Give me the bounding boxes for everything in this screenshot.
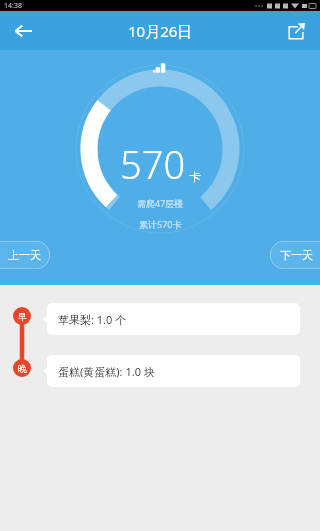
staticText: 14:38 (4, 1, 22, 11)
staticText: 下一天 (280, 248, 313, 262)
button[interactable]: 上一天 (0, 241, 50, 269)
button[interactable]: Share (280, 15, 312, 47)
staticText: 累计570卡 (139, 218, 182, 230)
button[interactable]: 蛋糕(黄蛋糕): 1.0 块 (43, 355, 300, 387)
staticText: 卡 (189, 169, 201, 184)
button[interactable]: 苹果梨: 1.0 个 (43, 303, 300, 335)
staticText: 蛋糕(黄蛋糕): 1.0 块 (58, 364, 155, 379)
staticText: 10月26日 (128, 21, 193, 41)
staticText: 上一天 (8, 248, 41, 262)
staticText: 早 (18, 311, 27, 322)
staticText: 570 (120, 138, 186, 190)
staticText: 苹果梨: 1.0 个 (58, 312, 127, 327)
button[interactable]: 下一天 (270, 241, 320, 269)
staticText: 晚 (18, 363, 27, 374)
staticText: 需爬47层楼 (137, 197, 184, 209)
button[interactable]: Back (6, 14, 40, 48)
